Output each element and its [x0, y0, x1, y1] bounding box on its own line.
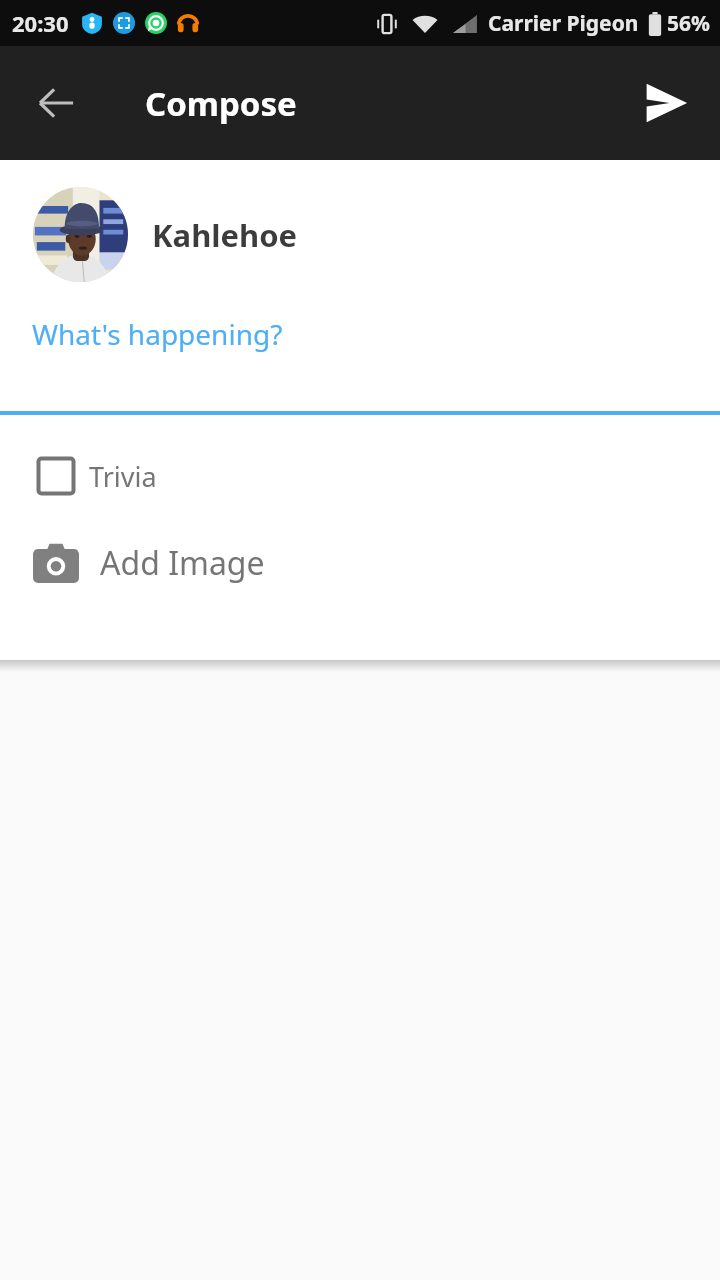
staticText: Compose: [145, 81, 297, 126]
staticText: Kahlehoe: [152, 214, 298, 256]
staticText: Trivia: [89, 458, 157, 495]
staticText: 20:30: [12, 8, 69, 38]
button[interactable]: Trivia: [0, 447, 720, 505]
staticText: Carrier Pigeon: [488, 9, 639, 38]
button[interactable]: What's happening?: [0, 309, 720, 359]
button[interactable]: Add Image: [0, 533, 720, 593]
staticText: 56%: [667, 9, 710, 38]
button[interactable]: Send: [628, 65, 704, 141]
staticText: What's happening?: [32, 315, 283, 353]
button[interactable]: Profile photo: [33, 187, 128, 282]
staticText: Add Image: [100, 541, 265, 585]
button[interactable]: Back: [16, 63, 96, 143]
